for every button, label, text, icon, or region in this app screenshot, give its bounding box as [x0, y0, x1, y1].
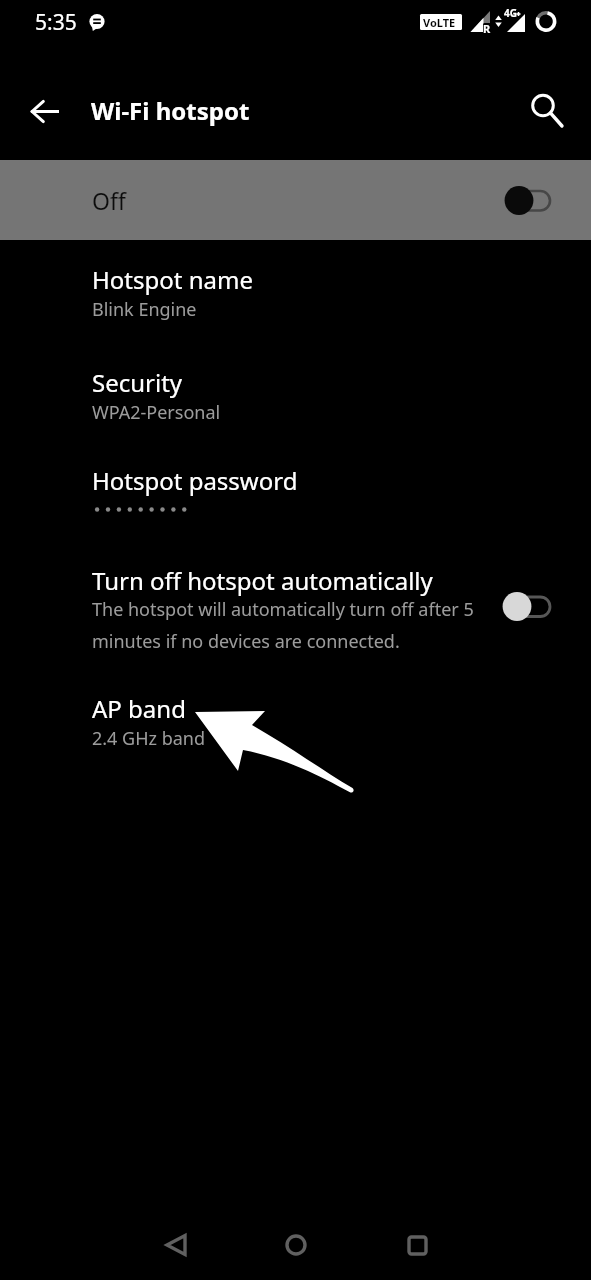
- staticText: Hotspot name: [92, 263, 253, 296]
- button[interactable]: Security: [0, 354, 591, 440]
- staticText: R: [483, 21, 491, 36]
- button[interactable]: AP band: [0, 680, 591, 766]
- button[interactable]: Home: [261, 1210, 331, 1280]
- staticText: The hotspot will automatically turn off …: [92, 597, 482, 653]
- staticText: Off: [92, 185, 126, 216]
- button[interactable]: Back: [141, 1210, 211, 1280]
- button[interactable]: Turn off hotspot automatically: [0, 552, 591, 664]
- staticText: AP band: [92, 692, 186, 725]
- button[interactable]: Hotspot on/off: [498, 186, 560, 216]
- staticText: Wi-Fi hotspot: [91, 94, 250, 127]
- staticText: Blink Engine: [92, 297, 197, 322]
- staticText: VoLTE: [423, 15, 456, 30]
- button[interactable]: Hotspot password: [0, 452, 591, 538]
- staticText: WPA2-Personal: [92, 400, 221, 425]
- button[interactable]: Navigate up: [16, 83, 72, 139]
- staticText: Turn off hotspot automatically: [92, 564, 433, 597]
- staticText: 4G: [504, 6, 517, 20]
- staticText: Security: [92, 366, 183, 399]
- staticText: Hotspot password: [92, 464, 298, 497]
- button[interactable]: Hotspot name: [0, 251, 591, 337]
- staticText: 5:35: [35, 8, 77, 37]
- button[interactable]: Off: [0, 160, 591, 240]
- button[interactable]: Search: [504, 67, 574, 137]
- staticText: 2.4 GHz band: [92, 726, 206, 751]
- button[interactable]: Turn off hotspot automatically: [496, 592, 558, 622]
- button[interactable]: Recent apps: [382, 1210, 452, 1280]
